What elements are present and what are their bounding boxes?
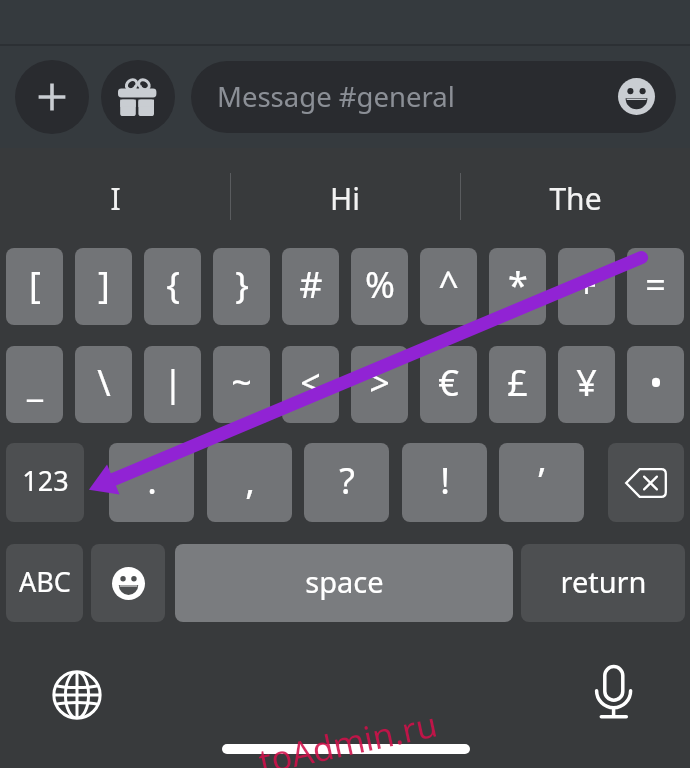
button[interactable]: Add attachment [15, 60, 89, 134]
staticText: • [649, 358, 663, 407]
staticText: £ [507, 358, 528, 407]
button[interactable]: ABC [6, 544, 83, 622]
button[interactable]: ’ [499, 443, 584, 522]
button[interactable]: , [207, 443, 292, 522]
button[interactable]: ~ [213, 346, 270, 423]
button[interactable]: ? [304, 443, 389, 522]
button[interactable]: Voice input [581, 656, 647, 728]
button[interactable]: Emoji [91, 544, 165, 622]
button[interactable]: # [282, 248, 339, 325]
button[interactable]: space [175, 544, 513, 622]
button[interactable]: = [627, 248, 684, 325]
button[interactable]: • [627, 346, 684, 423]
button[interactable]: £ [489, 346, 546, 423]
button[interactable]: ] [75, 248, 132, 325]
staticText: _ [27, 358, 43, 407]
staticText: ’ [538, 456, 545, 505]
staticText: Hi [330, 178, 360, 219]
staticText: = [645, 260, 666, 309]
button[interactable]: { [144, 248, 201, 325]
button[interactable]: return [521, 544, 685, 622]
staticText: The [549, 178, 602, 219]
staticText: \ [97, 358, 111, 407]
button[interactable]: . [109, 443, 194, 522]
button[interactable]: > [351, 346, 408, 423]
button[interactable]: Change keyboard language [44, 662, 110, 728]
staticText: ! [440, 456, 450, 505]
staticText: € [438, 358, 459, 407]
staticText: ? [339, 456, 355, 505]
staticText: { [166, 260, 180, 309]
staticText: ^ [438, 260, 459, 309]
staticText: | [163, 358, 183, 407]
button[interactable]: < [282, 346, 339, 423]
button[interactable]: _ [6, 346, 63, 423]
button[interactable]: | [144, 346, 201, 423]
staticText: I [110, 178, 121, 219]
button[interactable]: * [489, 248, 546, 325]
button[interactable]: Send a gift [101, 60, 175, 134]
button[interactable]: ¥ [558, 346, 615, 423]
staticText: ] [98, 260, 110, 309]
staticText: [ [29, 260, 41, 309]
staticText: Message #general [217, 78, 455, 115]
button[interactable]: The [460, 148, 690, 248]
button[interactable]: ! [402, 443, 487, 522]
button[interactable]: € [420, 346, 477, 423]
button[interactable]: I [0, 148, 230, 248]
staticText: , [245, 456, 255, 505]
staticText: . [147, 456, 157, 505]
button[interactable]: Hi [230, 148, 460, 248]
staticText: space [305, 562, 384, 601]
button[interactable]: } [213, 248, 270, 325]
staticText: * [508, 260, 528, 309]
staticText: ~ [231, 358, 252, 407]
button[interactable]: Emoji [618, 78, 655, 115]
staticText: } [235, 260, 249, 309]
button[interactable]: [ [6, 248, 63, 325]
button[interactable]: Backspace [608, 443, 684, 522]
button[interactable]: \ [75, 346, 132, 423]
button[interactable]: 123 [6, 443, 84, 522]
button[interactable]: Message #general [191, 61, 676, 133]
staticText: ABC [19, 563, 71, 600]
button[interactable]: + [558, 248, 615, 325]
staticText: < [300, 358, 321, 407]
button[interactable]: % [351, 248, 408, 325]
staticText: > [369, 358, 390, 407]
staticText: return [560, 562, 647, 601]
staticText: ¥ [576, 358, 597, 407]
staticText: # [299, 260, 323, 309]
button[interactable]: ^ [420, 248, 477, 325]
staticText: toAdmin.ru [254, 701, 442, 768]
staticText: % [365, 260, 395, 309]
staticText: + [576, 260, 597, 309]
staticText: 123 [22, 462, 69, 499]
